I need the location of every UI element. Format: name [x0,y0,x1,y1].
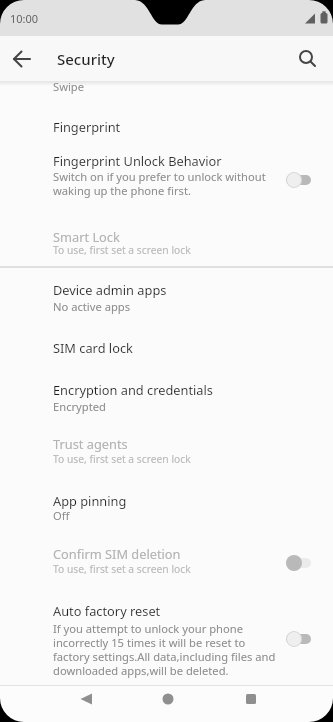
button[interactable] [154,686,182,722]
button[interactable]: App pinning [0,478,333,532]
staticText: Smart Lock [53,228,120,245]
button[interactable]: Confirm SIM deletion [0,532,333,588]
staticText: No active apps [53,299,131,314]
staticText: Trust agents [53,435,128,452]
staticText: Encryption and credentials [53,381,213,398]
button[interactable] [294,45,322,73]
staticText: Device admin apps [53,281,167,298]
staticText: Off [53,508,70,523]
button[interactable]: Auto factory reset [0,594,333,684]
staticText: To use, first set a screen lock [53,562,191,576]
staticText: To use, first set a screen lock [53,243,191,257]
button[interactable] [72,686,100,722]
staticText: Encrypted [53,399,106,414]
staticText: Security [57,49,115,69]
staticText: Swipe [53,79,85,94]
button[interactable] [8,45,36,73]
button[interactable]: Encryption and credentials [0,368,333,422]
button[interactable]: Swipe [0,81,333,101]
staticText: Confirm SIM deletion [53,545,181,562]
button[interactable]: Smart Lock [0,212,333,266]
staticText: To use, first set a screen lock [53,452,191,466]
button[interactable]: Fingerprint [0,105,333,147]
button[interactable]: Device admin apps [0,268,333,326]
staticText: Auto factory reset [53,602,161,619]
button[interactable]: Fingerprint Unlock Behavior [0,147,333,209]
button[interactable]: Trust agents [0,422,333,476]
staticText: 10:00 [10,11,39,26]
staticText: Switch on if you prefer to unlock withou… [53,169,266,198]
staticText: App pinning [53,492,127,509]
button[interactable] [237,686,265,722]
button[interactable]: SIM card lock [0,326,333,368]
staticText: Fingerprint Unlock Behavior [53,152,222,169]
staticText: SIM card lock [53,339,133,356]
staticText: If you attempt to unlock your phone inco… [53,621,276,678]
staticText: Fingerprint [53,118,121,135]
